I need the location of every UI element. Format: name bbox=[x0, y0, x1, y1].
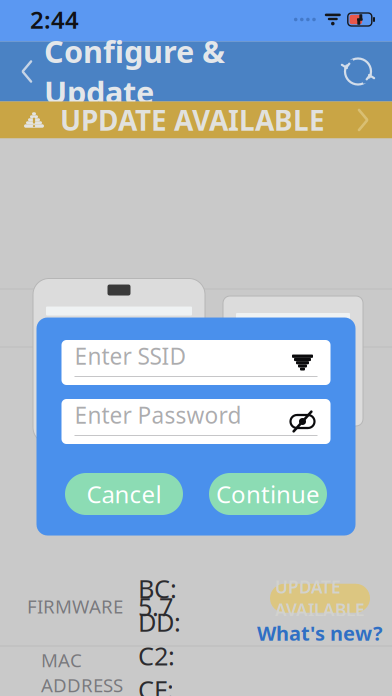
staticText: Continue bbox=[216, 478, 320, 510]
staticText: Cancel bbox=[86, 478, 161, 510]
staticText: What's new? bbox=[257, 620, 383, 646]
button[interactable]: UPDATE AVAILABLE bbox=[270, 584, 370, 613]
button[interactable]: Refresh bbox=[338, 51, 378, 91]
staticText: 5.7 bbox=[138, 589, 173, 623]
staticText: BC:DD:C2:CF:39:0C bbox=[138, 572, 187, 696]
button[interactable]: Back bbox=[12, 51, 42, 91]
button[interactable]: Choose network bbox=[287, 347, 317, 377]
staticText: FIRMWARE bbox=[27, 594, 123, 619]
staticText: 2:44 bbox=[30, 4, 79, 35]
staticText: UPDATE AVAILABLE bbox=[60, 101, 325, 139]
button[interactable]: What's new? bbox=[257, 620, 383, 646]
staticText: Enter SSID bbox=[74, 341, 186, 371]
button[interactable]: Cancel bbox=[65, 473, 183, 515]
staticText: MAC ADDRESS bbox=[41, 648, 123, 696]
staticText: Enter Password bbox=[74, 400, 241, 430]
button[interactable]: Show password bbox=[286, 406, 318, 436]
button[interactable]: Update available bbox=[0, 101, 392, 138]
button[interactable]: Continue bbox=[209, 473, 327, 515]
staticText: UPDATE AVAILABLE bbox=[275, 575, 365, 621]
staticText: Configure & Update bbox=[44, 31, 225, 112]
